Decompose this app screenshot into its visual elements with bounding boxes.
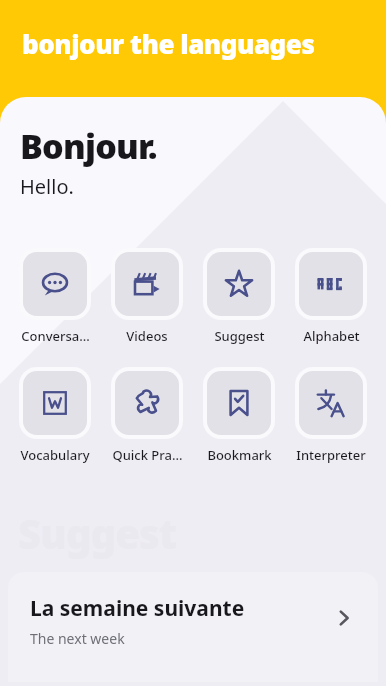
- button[interactable]: Videos: [106, 248, 188, 345]
- other: Open suggestion: [332, 606, 356, 630]
- staticText: La semaine suivante: [30, 594, 245, 623]
- staticText: Bonjour.: [20, 123, 157, 169]
- button[interactable]: Bookmark: [198, 367, 280, 464]
- staticText: Vocabulary: [20, 446, 90, 464]
- staticText: Conversa…: [21, 327, 90, 345]
- staticText: Videos: [126, 327, 168, 345]
- staticText: Quick Pra…: [112, 446, 183, 464]
- button[interactable]: La semaine suivante: [8, 572, 378, 682]
- staticText: Interpreter: [296, 446, 366, 464]
- staticText: bonjour the languages: [22, 26, 315, 61]
- button[interactable]: Quick Pra…: [106, 367, 188, 464]
- button[interactable]: Conversa…: [14, 248, 96, 345]
- button[interactable]: Interpreter: [290, 367, 372, 464]
- staticText: Suggest: [214, 327, 265, 345]
- button[interactable]: Vocabulary: [14, 367, 96, 464]
- staticText: The next week: [30, 629, 125, 648]
- staticText: Bookmark: [207, 446, 272, 464]
- staticText: Alphabet: [303, 327, 360, 345]
- button[interactable]: Suggest: [198, 248, 280, 345]
- staticText: Hello.: [20, 173, 74, 200]
- button[interactable]: Alphabet: [290, 248, 372, 345]
